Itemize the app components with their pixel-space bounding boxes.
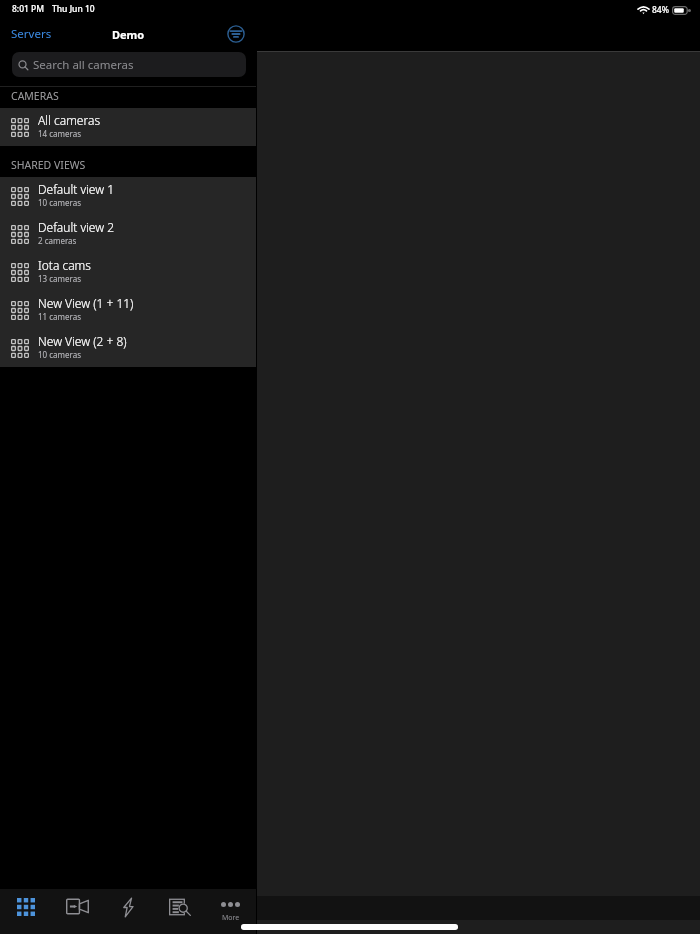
button[interactable]: Filter (227, 25, 245, 43)
button[interactable]: Views (0, 889, 52, 934)
staticText: New View (2 + 8) (38, 333, 127, 349)
staticText: 2 cameras (38, 235, 77, 246)
staticText: 8:01 PM (12, 3, 45, 15)
button[interactable]: Default view 1 (0, 177, 256, 215)
staticText: Demo (112, 27, 145, 42)
staticText: 10 cameras (38, 349, 82, 360)
button[interactable]: New View (1 + 11) (0, 291, 256, 329)
staticText: Thu Jun 10 (52, 3, 95, 15)
staticText: CAMERAS (11, 89, 59, 103)
staticText: 13 cameras (38, 273, 82, 284)
staticText: Iota cams (38, 257, 91, 273)
staticText: New View (1 + 11) (38, 295, 134, 311)
button[interactable]: Playback (52, 889, 103, 934)
staticText: 84% (652, 4, 669, 16)
button[interactable]: New View (2 + 8) (0, 329, 256, 367)
staticText: SHARED VIEWS (11, 158, 86, 172)
button[interactable]: Servers (5, 23, 58, 45)
button[interactable]: More (205, 889, 256, 934)
button[interactable]: Default view 2 (0, 215, 256, 253)
staticText: Search all cameras (33, 57, 134, 73)
staticText: More (222, 913, 240, 923)
button[interactable]: Search all cameras (12, 52, 246, 77)
staticText: Servers (11, 26, 52, 42)
staticText: 14 cameras (38, 128, 82, 139)
button[interactable]: Iota cams (0, 253, 256, 291)
button[interactable]: All cameras (0, 108, 256, 146)
button[interactable]: Events (103, 889, 154, 934)
staticText: Default view 1 (38, 181, 115, 197)
staticText: All cameras (38, 112, 101, 128)
staticText: 11 cameras (38, 311, 82, 322)
button[interactable]: Log (154, 889, 205, 934)
staticText: 10 cameras (38, 197, 82, 208)
staticText: Default view 2 (38, 219, 115, 235)
